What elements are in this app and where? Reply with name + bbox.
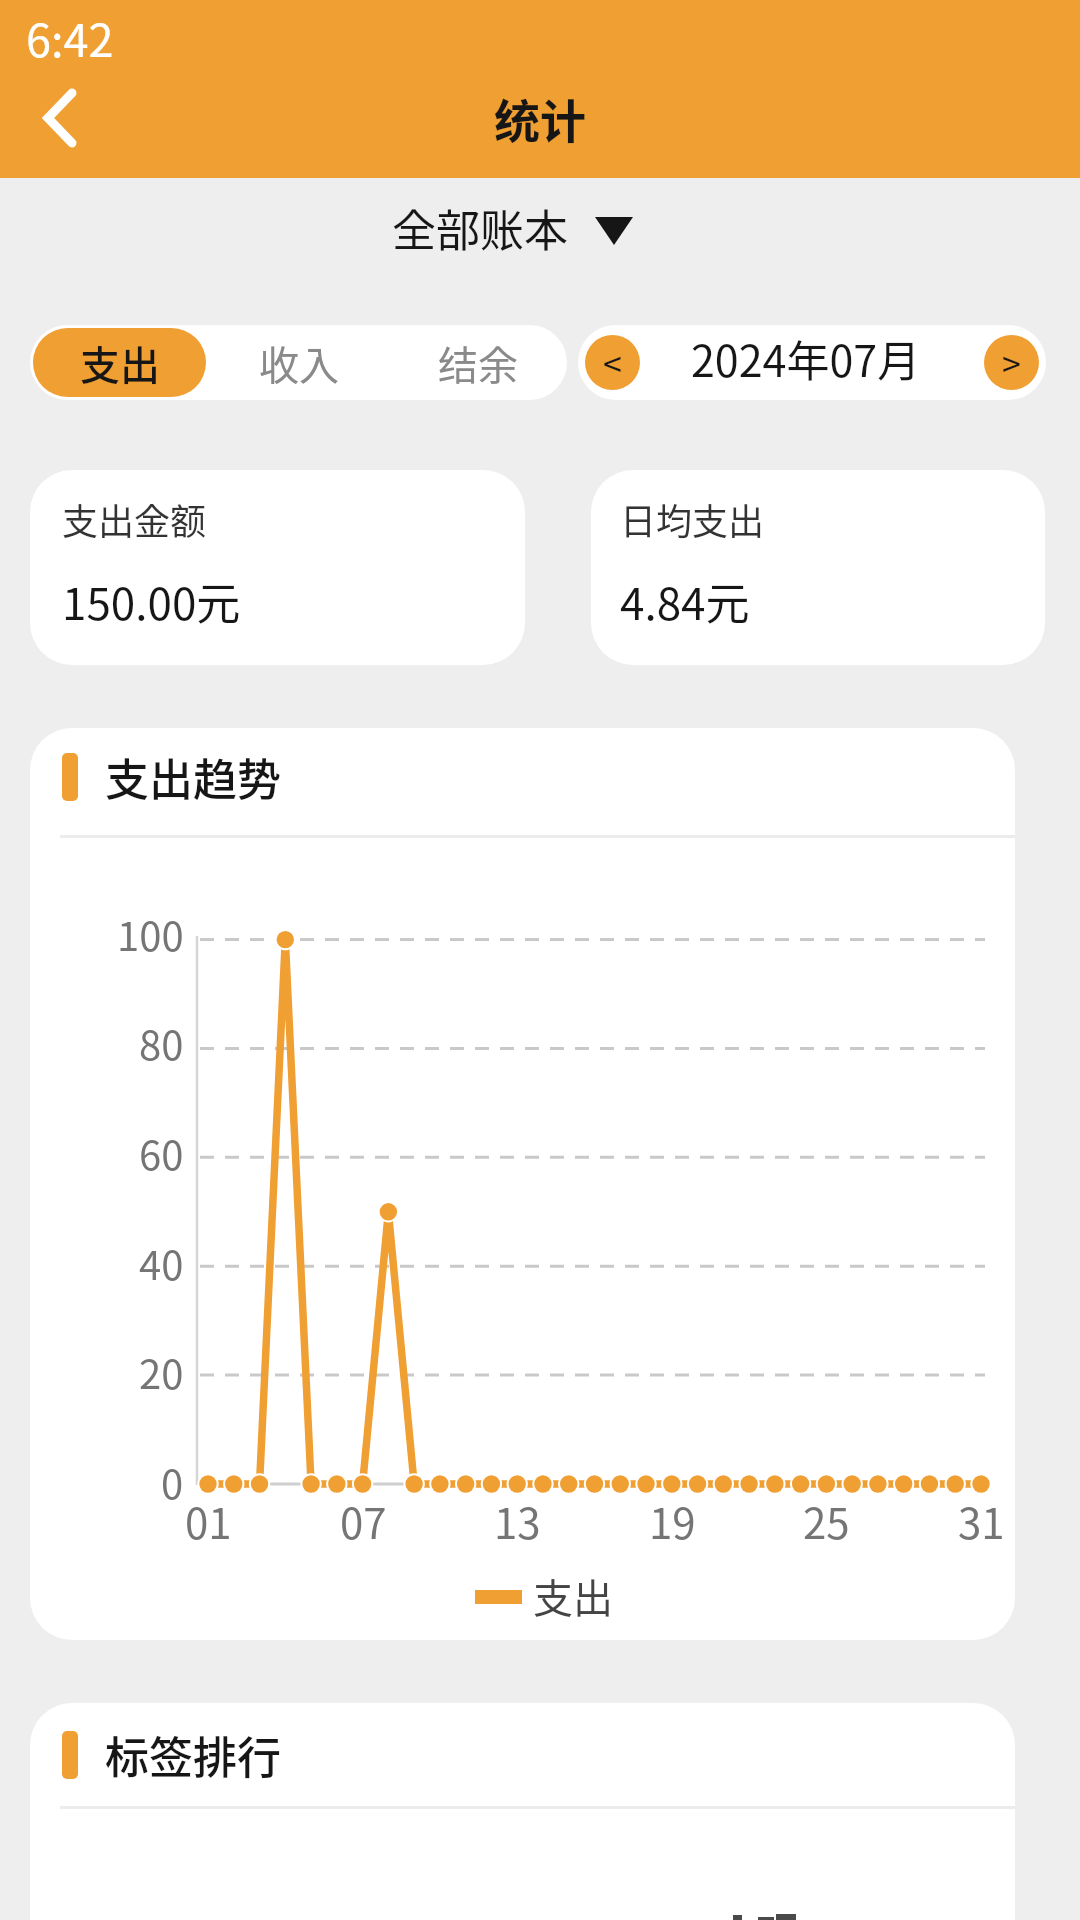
staticText: 6:42 <box>26 5 114 70</box>
staticText: 日均支出 <box>620 493 765 545</box>
staticText: 4.84元 <box>620 569 750 633</box>
staticText: 支出趋势 <box>105 745 281 809</box>
button[interactable] <box>24 76 96 160</box>
staticText: > <box>1002 338 1021 387</box>
button[interactable]: 收入 <box>209 325 388 400</box>
staticText: 19 <box>649 1490 696 1551</box>
staticText: 支出 <box>80 334 160 392</box>
staticText: 31 <box>958 1490 1005 1551</box>
staticText: 13 <box>494 1490 541 1551</box>
staticText: 150.00元 <box>62 569 241 633</box>
staticText: 结余 <box>438 334 518 392</box>
staticText: 标签排行 <box>105 1723 281 1787</box>
staticText: 01 <box>185 1490 232 1551</box>
button[interactable] <box>370 190 670 266</box>
staticText: 2024年07月 <box>691 327 921 389</box>
staticText: 25 <box>803 1490 850 1551</box>
staticText: 100 <box>117 905 184 963</box>
staticText: 60 <box>139 1124 184 1182</box>
staticText: 统计 <box>494 85 586 152</box>
staticText: 收入 <box>259 334 339 392</box>
button[interactable]: 支出 <box>30 325 209 400</box>
staticText: 0 <box>161 1453 184 1511</box>
staticText: 全部账本 <box>392 196 568 260</box>
staticText: 20 <box>139 1343 184 1401</box>
staticText: 07 <box>340 1490 387 1551</box>
staticText: 支出金额 <box>62 493 207 545</box>
staticText: 40 <box>139 1234 184 1292</box>
staticText: 支出 <box>533 1567 613 1625</box>
button[interactable]: > <box>984 335 1039 390</box>
staticText: 80 <box>139 1014 184 1072</box>
button[interactable]: 结余 <box>388 325 567 400</box>
staticText: < <box>603 338 622 387</box>
button[interactable]: < <box>585 335 640 390</box>
